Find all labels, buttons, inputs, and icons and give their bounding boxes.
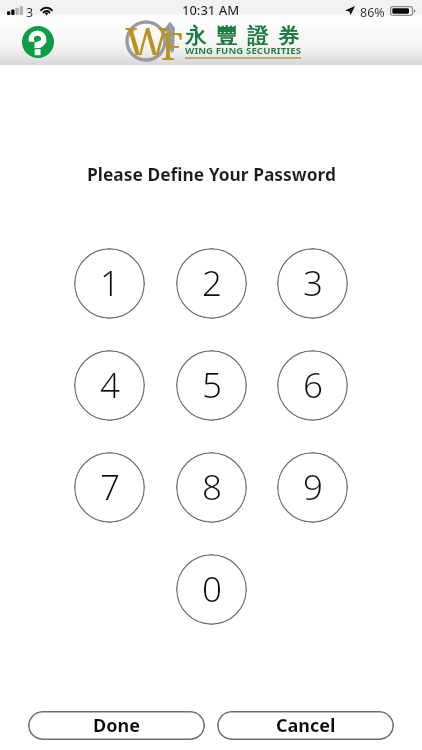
staticText: Done [93, 713, 140, 738]
button[interactable]: 6 [277, 350, 348, 421]
button[interactable]: 7 [74, 452, 145, 523]
button[interactable]: Help [22, 26, 54, 58]
staticText: 8 [202, 463, 222, 511]
button[interactable]: Done [28, 711, 205, 740]
staticText: 4 [100, 361, 120, 409]
staticText: Please Define Your Password [87, 162, 336, 186]
button[interactable]: 0 [176, 554, 247, 625]
staticText: 9 [303, 463, 323, 511]
staticText: 5 [202, 361, 222, 409]
staticText: 86% [360, 4, 385, 21]
staticText: 3 [26, 4, 34, 21]
staticText: WING FUNG SECURITIES [185, 44, 302, 57]
button[interactable]: 5 [176, 350, 247, 421]
staticText: F [161, 19, 184, 61]
staticText: 永豐證券 [180, 23, 304, 49]
button[interactable]: 1 [74, 248, 145, 319]
staticText: 3 [303, 259, 323, 307]
staticText: W [125, 13, 169, 55]
staticText: Cancel [276, 713, 336, 738]
button[interactable]: 2 [176, 248, 247, 319]
button[interactable]: 8 [176, 452, 247, 523]
button[interactable]: 4 [74, 350, 145, 421]
button[interactable]: 3 [277, 248, 348, 319]
staticText: 10:31 AM [182, 1, 240, 19]
staticText: 7 [100, 463, 120, 511]
staticText: 1 [100, 259, 120, 307]
staticText: 6 [303, 361, 323, 409]
button[interactable]: Cancel [217, 711, 394, 740]
button[interactable]: 9 [277, 452, 348, 523]
staticText: 2 [202, 259, 222, 307]
staticText: 0 [202, 565, 222, 613]
